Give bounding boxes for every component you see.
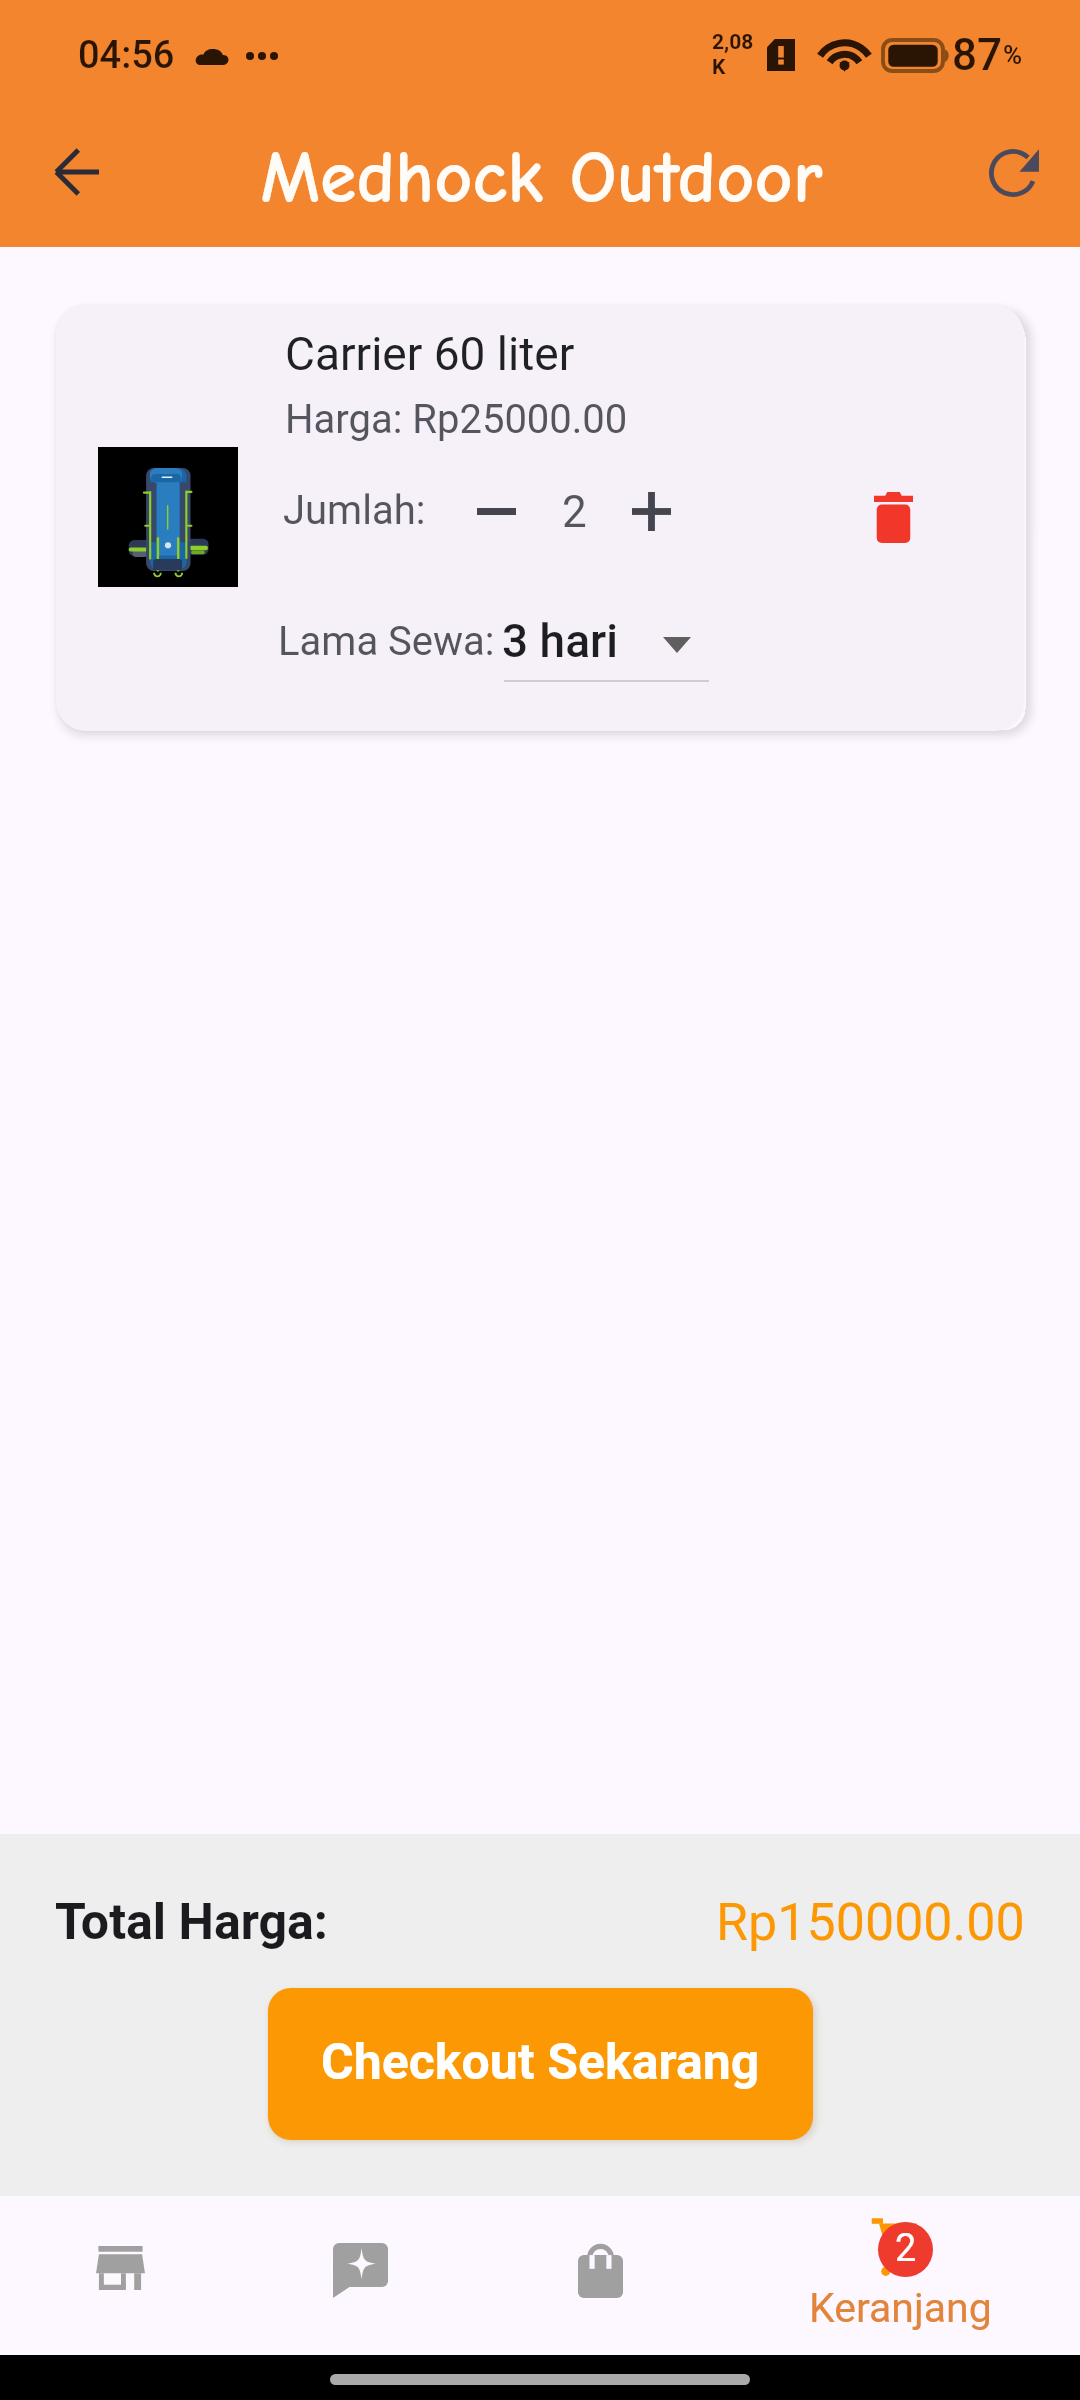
- staticText: 3 hari: [502, 614, 618, 668]
- button[interactable]: Belanja: [480, 2196, 720, 2355]
- button[interactable]: Toko: [0, 2196, 240, 2355]
- staticText: Keranjang: [809, 2284, 992, 2332]
- staticText: Jumlah:: [283, 487, 426, 534]
- staticText: Medhock Outdoor: [260, 135, 823, 220]
- staticText: Lama Sewa:: [278, 618, 505, 665]
- staticText: 2,08: [712, 30, 754, 55]
- button[interactable]: Increase quantity: [617, 477, 685, 545]
- button[interactable]: Back: [24, 119, 130, 225]
- staticText: 87: [952, 29, 1003, 81]
- button[interactable]: Refresh: [968, 128, 1058, 218]
- staticText: Carrier 60 liter: [285, 327, 575, 381]
- staticText: 04:56: [78, 33, 175, 78]
- staticText: Total Harga:: [55, 1893, 328, 1952]
- staticText: Harga: Rp25000.00: [285, 396, 628, 443]
- staticText: Rp150000.00: [716, 1892, 1025, 1953]
- button[interactable]: Decrease quantity: [462, 477, 530, 545]
- button[interactable]: Delete item: [846, 470, 940, 564]
- button[interactable]: Rental duration: [502, 608, 712, 680]
- staticText: %: [1003, 40, 1023, 70]
- button[interactable]: Checkout Sekarang: [268, 1988, 813, 2140]
- button[interactable]: Carrier 60 liter: [56, 305, 1024, 731]
- button[interactable]: Rekomendasi: [240, 2196, 480, 2355]
- staticText: K: [712, 55, 726, 80]
- button[interactable]: 2: [720, 2196, 1080, 2355]
- staticText: 2: [895, 2226, 917, 2271]
- staticText: Checkout Sekarang: [321, 2033, 760, 2092]
- staticText: 2: [562, 486, 587, 538]
